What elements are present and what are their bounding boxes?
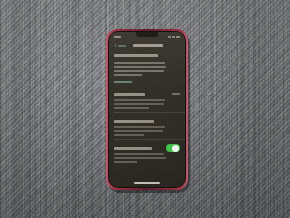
button[interactable]: Learn more about battery health (114, 81, 132, 83)
button[interactable]: Optimized Battery Charging, on (109, 143, 185, 153)
button[interactable]: Optimized Battery Charging, on (166, 144, 180, 152)
button[interactable] (109, 89, 185, 99)
button[interactable] (109, 116, 185, 126)
button[interactable]: Back to Battery (113, 43, 127, 48)
